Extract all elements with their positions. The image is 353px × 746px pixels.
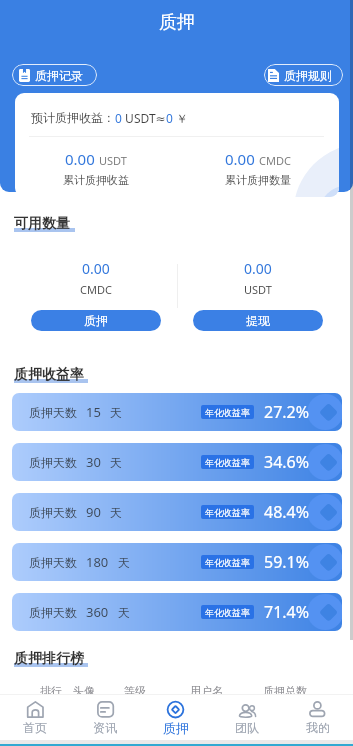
staticText: 天 bbox=[110, 505, 122, 520]
button[interactable]: 提现 bbox=[193, 310, 323, 331]
staticText: 0.00 bbox=[65, 149, 95, 169]
staticText: 0 bbox=[115, 110, 122, 126]
staticText: 资讯 bbox=[93, 720, 117, 735]
staticText: 48.4% bbox=[264, 501, 310, 523]
button[interactable]: 首页 bbox=[0, 694, 70, 740]
staticText: 质押 bbox=[84, 313, 108, 328]
staticText: 天 bbox=[110, 455, 122, 470]
staticText: USDT≈ bbox=[122, 110, 166, 126]
staticText: 提现 bbox=[246, 313, 270, 328]
staticText: 天 bbox=[118, 605, 130, 620]
button[interactable]: 我的 bbox=[282, 694, 353, 740]
staticText: 0.00 bbox=[82, 259, 110, 278]
staticText: 我的 bbox=[306, 720, 330, 735]
staticText: 首页 bbox=[23, 720, 47, 735]
staticText: 年化收益率 bbox=[205, 557, 250, 568]
button[interactable]: 质押 bbox=[140, 694, 211, 740]
button[interactable]: 团队 bbox=[211, 694, 282, 740]
staticText: 质押记录 bbox=[35, 68, 83, 83]
staticText: 天 bbox=[110, 405, 122, 420]
staticText: 质押天数 bbox=[29, 505, 77, 520]
button[interactable]: 质押天数 bbox=[12, 443, 342, 481]
staticText: 180 bbox=[86, 553, 109, 571]
staticText: 累计质押数量 bbox=[225, 173, 291, 187]
staticText: 质押天数 bbox=[29, 405, 77, 420]
staticText: 天 bbox=[118, 555, 130, 570]
staticText: 质押 bbox=[159, 11, 195, 34]
staticText: USDT bbox=[99, 153, 127, 168]
staticText: 质押 bbox=[163, 720, 189, 736]
button[interactable]: 质押规则 bbox=[264, 64, 343, 86]
staticText: 34.6% bbox=[264, 451, 310, 473]
staticText: 71.4% bbox=[264, 601, 310, 623]
staticText: 质押天数 bbox=[29, 555, 77, 570]
staticText: 质押总数 bbox=[263, 684, 307, 698]
staticText: 0.00 bbox=[225, 149, 255, 169]
button[interactable]: 质押天数 bbox=[12, 543, 342, 581]
staticText: 30 bbox=[86, 453, 101, 471]
staticText: 等级 bbox=[124, 684, 146, 698]
staticText: 27.2% bbox=[264, 401, 310, 423]
staticText: 可用数量 bbox=[14, 215, 70, 233]
staticText: 15 bbox=[86, 403, 101, 421]
staticText: 团队 bbox=[235, 720, 259, 735]
button[interactable]: 质押天数 bbox=[12, 593, 342, 631]
staticText: 头像 bbox=[73, 684, 95, 698]
staticText: 排行 bbox=[40, 684, 62, 698]
staticText: 年化收益率 bbox=[205, 457, 250, 468]
button[interactable]: 资讯 bbox=[70, 694, 140, 740]
staticText: ￥ bbox=[173, 110, 189, 126]
staticText: 360 bbox=[86, 603, 109, 621]
button[interactable]: 质押天数 bbox=[12, 393, 342, 431]
staticText: 质押规则 bbox=[284, 68, 332, 83]
staticText: 质押天数 bbox=[29, 455, 77, 470]
staticText: 年化收益率 bbox=[205, 507, 250, 518]
staticText: 质押排行榜 bbox=[14, 650, 84, 668]
staticText: 累计质押收益 bbox=[63, 173, 129, 187]
staticText: 年化收益率 bbox=[205, 407, 250, 418]
staticText: 0 bbox=[166, 110, 173, 126]
staticText: 年化收益率 bbox=[205, 607, 250, 618]
button[interactable]: 质押 bbox=[31, 310, 161, 331]
staticText: CMDC bbox=[80, 282, 112, 297]
staticText: 用户名 bbox=[190, 684, 223, 698]
staticText: USDT bbox=[244, 282, 272, 297]
staticText: 59.1% bbox=[264, 551, 310, 573]
staticText: 0.00 bbox=[244, 259, 272, 278]
staticText: CMDC bbox=[259, 153, 291, 168]
staticText: 预计质押收益： bbox=[31, 110, 115, 125]
button[interactable]: 质押天数 bbox=[12, 493, 342, 531]
staticText: 质押天数 bbox=[29, 605, 77, 620]
staticText: 质押收益率 bbox=[14, 366, 84, 384]
staticText: 90 bbox=[86, 503, 101, 521]
button[interactable]: 质押记录 bbox=[12, 64, 97, 86]
